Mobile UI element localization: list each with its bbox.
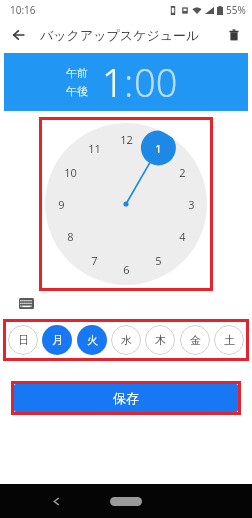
button[interactable]: 土 — [214, 325, 244, 355]
button[interactable]: Clock face — [45, 123, 207, 285]
staticText: 3 — [188, 197, 195, 212]
button[interactable]: 保存 — [14, 384, 238, 412]
button[interactable]: Home — [110, 497, 142, 506]
staticText: バックアップスケジュール — [40, 27, 200, 43]
staticText: 日 — [18, 333, 29, 347]
staticText: 4 — [179, 229, 186, 244]
staticText: 12 — [120, 132, 133, 147]
button[interactable]: 水 — [111, 325, 141, 355]
button[interactable]: 木 — [145, 325, 175, 355]
staticText: 1 — [102, 56, 124, 108]
staticText: : — [124, 56, 134, 108]
staticText: 11 — [88, 141, 101, 156]
staticText: 5 — [155, 253, 162, 268]
button[interactable]: Delete — [222, 23, 246, 47]
staticText: 午前 — [66, 66, 88, 80]
staticText: 55% — [226, 3, 246, 17]
staticText: 10 — [64, 165, 77, 180]
button[interactable]: Keyboard input — [16, 293, 36, 313]
button[interactable]: Back — [6, 22, 32, 48]
staticText: 9 — [58, 197, 65, 212]
button[interactable]: 日 — [8, 325, 38, 355]
staticText: 月 — [52, 333, 63, 347]
staticText: 金 — [190, 333, 201, 347]
staticText: 土 — [224, 333, 235, 347]
button[interactable]: 午前 — [66, 66, 88, 80]
button[interactable]: 00 — [134, 56, 178, 108]
staticText: 8 — [67, 229, 74, 244]
staticText: 午後 — [66, 84, 88, 98]
staticText: 火 — [87, 333, 98, 347]
button[interactable]: 金 — [180, 325, 210, 355]
button[interactable]: 火 — [77, 325, 107, 355]
staticText: 6 — [123, 262, 130, 277]
staticText: 2 — [179, 165, 186, 180]
staticText: 木 — [155, 333, 166, 347]
staticText: 10:16 — [10, 3, 36, 17]
staticText: 保存 — [113, 390, 139, 406]
button[interactable]: 午後 — [66, 84, 88, 98]
button[interactable]: 月 — [42, 325, 72, 355]
staticText: 00 — [134, 56, 178, 108]
button[interactable]: Back — [44, 489, 68, 513]
staticText: 水 — [121, 333, 132, 347]
staticText: 7 — [91, 253, 98, 268]
button[interactable]: 1 — [102, 56, 124, 108]
staticText: 1 — [155, 141, 162, 156]
